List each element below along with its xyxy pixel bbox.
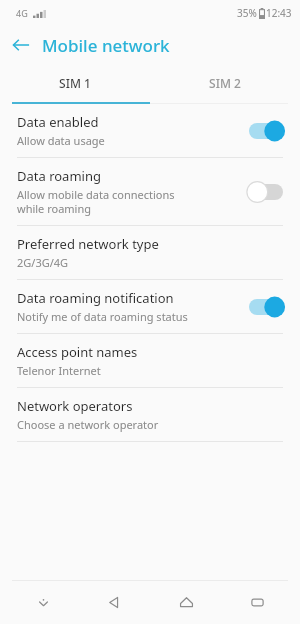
staticText: Telenor Internet (17, 363, 101, 378)
staticText: Preferred network type (17, 235, 159, 253)
staticText: Mobile network (42, 34, 170, 57)
staticText: 2G/3G/4G (17, 255, 69, 270)
staticText: Data roaming (17, 167, 101, 185)
button[interactable]: Hide navigation bar (14, 581, 72, 624)
button[interactable]: SIM 1 (0, 64, 150, 102)
staticText: 35% (237, 6, 257, 20)
button[interactable]: Recent apps (228, 581, 286, 624)
button[interactable]: Data roaming (0, 158, 300, 225)
staticText: Access point names (17, 343, 138, 361)
button[interactable]: SIM 2 (150, 64, 300, 102)
staticText: SIM 2 (209, 75, 241, 91)
button[interactable]: Network operators (0, 388, 300, 441)
staticText: Data roaming notification (17, 289, 174, 307)
staticText: 4G (16, 7, 28, 19)
staticText: Network operators (17, 397, 133, 415)
button[interactable]: Back (85, 581, 143, 624)
staticText: Notify me of data roaming status (17, 309, 188, 324)
button[interactable]: Switch on (244, 118, 288, 144)
staticText: SIM 1 (59, 75, 91, 91)
button[interactable]: Data enabled (0, 104, 300, 157)
staticText: Choose a network operator (17, 417, 159, 432)
button[interactable]: Back (0, 26, 42, 64)
staticText: Allow mobile data connections while roam… (17, 187, 175, 216)
button[interactable]: Access point names (0, 334, 300, 387)
button[interactable]: Preferred network type (0, 226, 300, 279)
button[interactable]: Switch on (244, 294, 288, 320)
button[interactable]: Home (157, 581, 215, 624)
staticText: 12:43 (266, 6, 292, 20)
staticText: Allow data usage (17, 133, 105, 148)
button[interactable]: Switch off (244, 179, 288, 205)
button[interactable]: Data roaming notification (0, 280, 300, 333)
staticText: Data enabled (17, 113, 99, 131)
